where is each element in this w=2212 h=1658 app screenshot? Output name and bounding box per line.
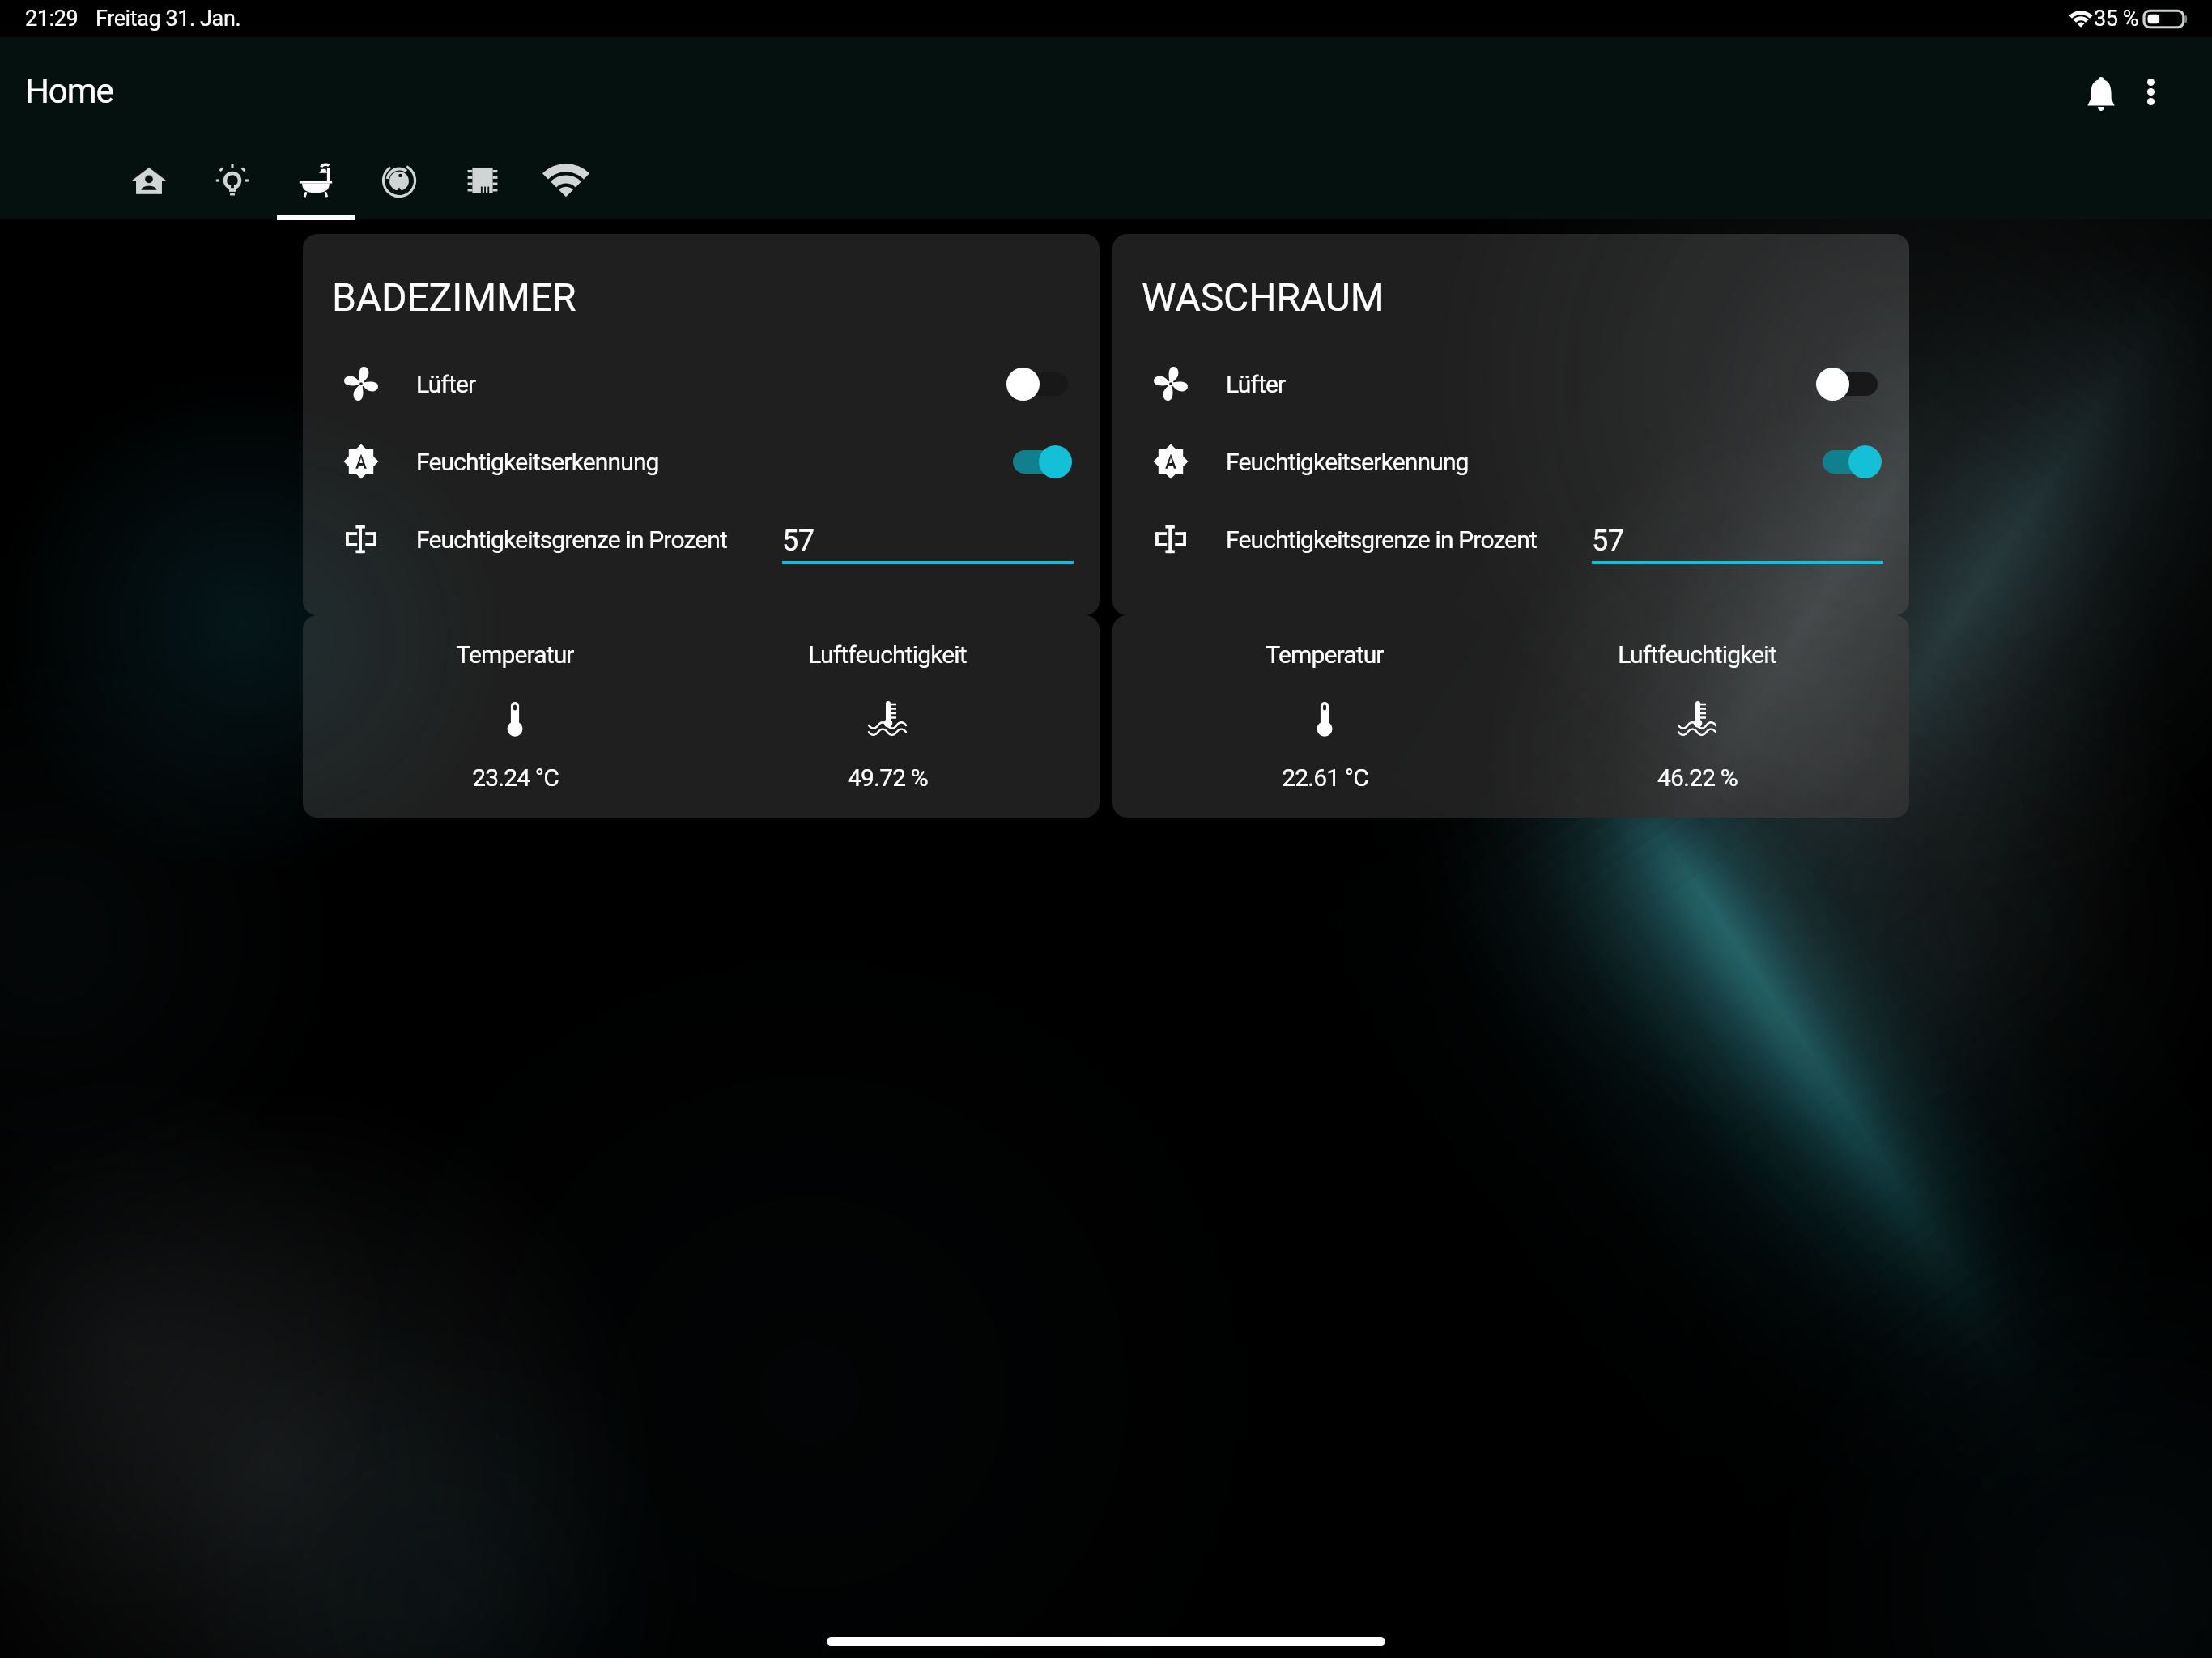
button[interactable]: Feuchtigkeitserkennung on [1013, 444, 1068, 479]
staticText: BADEZIMMER [332, 274, 576, 320]
button[interactable]: Feuchtigkeitsgrenze in Prozent [1112, 500, 1909, 578]
button[interactable]: Network [524, 138, 607, 219]
button[interactable]: Lüfter [1112, 345, 1909, 423]
staticText: Home [25, 71, 113, 111]
button[interactable]: Vacuum [357, 138, 440, 219]
button[interactable]: Lüfter off [1013, 366, 1068, 402]
button[interactable]: Feuchtigkeitserkennung [303, 423, 1100, 500]
button[interactable]: Lights [190, 138, 274, 219]
button[interactable]: 57 [1592, 500, 1883, 567]
button[interactable]: Lüfter [303, 345, 1100, 423]
staticText: 35 % [2094, 6, 2139, 32]
staticText: 22.61 °C [1282, 763, 1368, 792]
staticText: Feuchtigkeitsgrenze in Prozent [416, 525, 727, 554]
staticText: Luftfeuchtigkeit [808, 640, 967, 669]
button[interactable]: More options [2118, 59, 2183, 124]
button[interactable]: Devices [440, 138, 524, 219]
staticText: 46.22 % [1657, 763, 1738, 792]
staticText: 57 [782, 524, 815, 558]
staticText: Freitag 31. Jan. [96, 6, 241, 32]
staticText: 23.24 °C [472, 763, 559, 792]
staticText: Luftfeuchtigkeit [1618, 640, 1776, 669]
button[interactable]: Feuchtigkeitserkennung on [1823, 444, 1878, 479]
staticText: 57 [1592, 524, 1624, 558]
staticText: Temperatur [1266, 640, 1384, 669]
button[interactable]: Feuchtigkeitserkennung [1112, 423, 1909, 500]
staticText: Feuchtigkeitsgrenze in Prozent [1226, 525, 1537, 554]
staticText: Feuchtigkeitserkennung [1226, 448, 1469, 476]
button[interactable]: 57 [782, 500, 1074, 567]
staticText: 21:29 [25, 6, 79, 32]
staticText: Temperatur [456, 640, 574, 669]
staticText: 49.72 % [848, 763, 928, 792]
button[interactable]: Bathroom [274, 138, 357, 219]
button[interactable]: Lüfter off [1823, 366, 1878, 402]
staticText: Feuchtigkeitserkennung [416, 448, 659, 476]
staticText: WASCHRAUM [1142, 274, 1385, 320]
button[interactable]: Notifications [2065, 59, 2129, 124]
button[interactable]: Home [107, 138, 190, 219]
staticText: Lüfter [416, 370, 476, 398]
button[interactable]: Feuchtigkeitsgrenze in Prozent [303, 500, 1100, 578]
staticText: Lüfter [1226, 370, 1286, 398]
